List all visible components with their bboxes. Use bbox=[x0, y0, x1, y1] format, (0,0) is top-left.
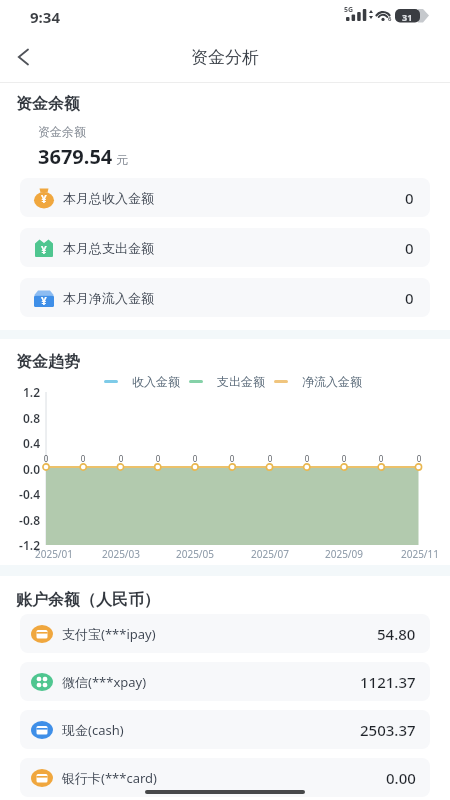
button[interactable]: 银行卡(***card) bbox=[20, 758, 430, 797]
staticText: 0 bbox=[40, 453, 52, 464]
staticText: 0 bbox=[152, 453, 164, 464]
button[interactable]: ¥ bbox=[20, 228, 430, 267]
staticText: 2025/05 bbox=[165, 547, 225, 561]
staticText: 本月总收入金额 bbox=[63, 190, 154, 206]
staticText: 2025/11 bbox=[390, 547, 450, 561]
staticText: -0.8 bbox=[8, 512, 40, 528]
staticText: 2503.37 bbox=[360, 720, 416, 740]
staticText: 3679.54 bbox=[38, 143, 113, 170]
staticText: 0 bbox=[405, 288, 414, 308]
staticText: 资金趋势 bbox=[16, 352, 80, 372]
staticText: 0 bbox=[115, 453, 127, 464]
staticText: 1121.37 bbox=[360, 672, 416, 692]
staticText: 0 bbox=[405, 238, 414, 258]
staticText: 本月净流入金额 bbox=[63, 290, 154, 306]
staticText: 支付宝(***ipay) bbox=[62, 625, 156, 643]
staticText: 31 bbox=[402, 11, 413, 23]
staticText: 资金余额 bbox=[16, 94, 80, 114]
staticText: 0 bbox=[301, 453, 313, 464]
staticText: 9:34 bbox=[30, 7, 60, 27]
staticText: 0 bbox=[338, 453, 350, 464]
staticText: 0 bbox=[189, 453, 201, 464]
staticText: 0 bbox=[264, 453, 276, 464]
staticText: 支出金额 bbox=[217, 374, 265, 389]
staticText: 0.00 bbox=[386, 768, 416, 788]
staticText: ¥ bbox=[41, 243, 47, 257]
staticText: ¥ bbox=[41, 294, 47, 308]
staticText: 0 bbox=[77, 453, 89, 464]
staticText: 1.2 bbox=[8, 384, 40, 400]
staticText: 0 bbox=[405, 188, 414, 208]
button[interactable]: ¥ bbox=[20, 278, 430, 317]
staticText: 54.80 bbox=[377, 624, 416, 644]
staticText: 元 bbox=[113, 151, 129, 167]
staticText: 收入金额 bbox=[132, 374, 180, 389]
staticText: 净流入金额 bbox=[302, 374, 362, 389]
staticText: 资金分析 bbox=[191, 47, 259, 68]
staticText: 0 bbox=[413, 453, 425, 464]
staticText: 2025/03 bbox=[91, 547, 151, 561]
button[interactable]: 微信(***xpay) bbox=[20, 662, 430, 701]
staticText: -0.4 bbox=[8, 486, 40, 502]
staticText: 银行卡(***card) bbox=[62, 769, 157, 787]
staticText: 账户余额（人民币） bbox=[16, 590, 160, 610]
staticText: 2025/01 bbox=[24, 547, 84, 561]
staticText: 本月总支出金额 bbox=[63, 240, 154, 256]
staticText: ¥ bbox=[41, 192, 47, 206]
staticText: 0.0 bbox=[8, 461, 40, 477]
staticText: -1.2 bbox=[8, 537, 40, 553]
staticText: 2025/09 bbox=[314, 547, 374, 561]
button[interactable] bbox=[6, 39, 42, 75]
button[interactable]: 现金(cash) bbox=[20, 710, 430, 749]
staticText: 0.8 bbox=[8, 410, 40, 426]
staticText: 0 bbox=[375, 453, 387, 464]
staticText: 资金余额 bbox=[38, 124, 86, 139]
button[interactable]: ¥ bbox=[20, 178, 430, 217]
button[interactable]: 支付宝(***ipay) bbox=[20, 614, 430, 653]
staticText: 微信(***xpay) bbox=[62, 673, 147, 691]
staticText: 现金(cash) bbox=[62, 721, 124, 739]
staticText: 0 bbox=[226, 453, 238, 464]
staticText: 2025/07 bbox=[240, 547, 300, 561]
staticText: 6 bbox=[388, 15, 392, 23]
staticText: 5G bbox=[344, 5, 354, 15]
staticText: 0.4 bbox=[8, 435, 40, 451]
